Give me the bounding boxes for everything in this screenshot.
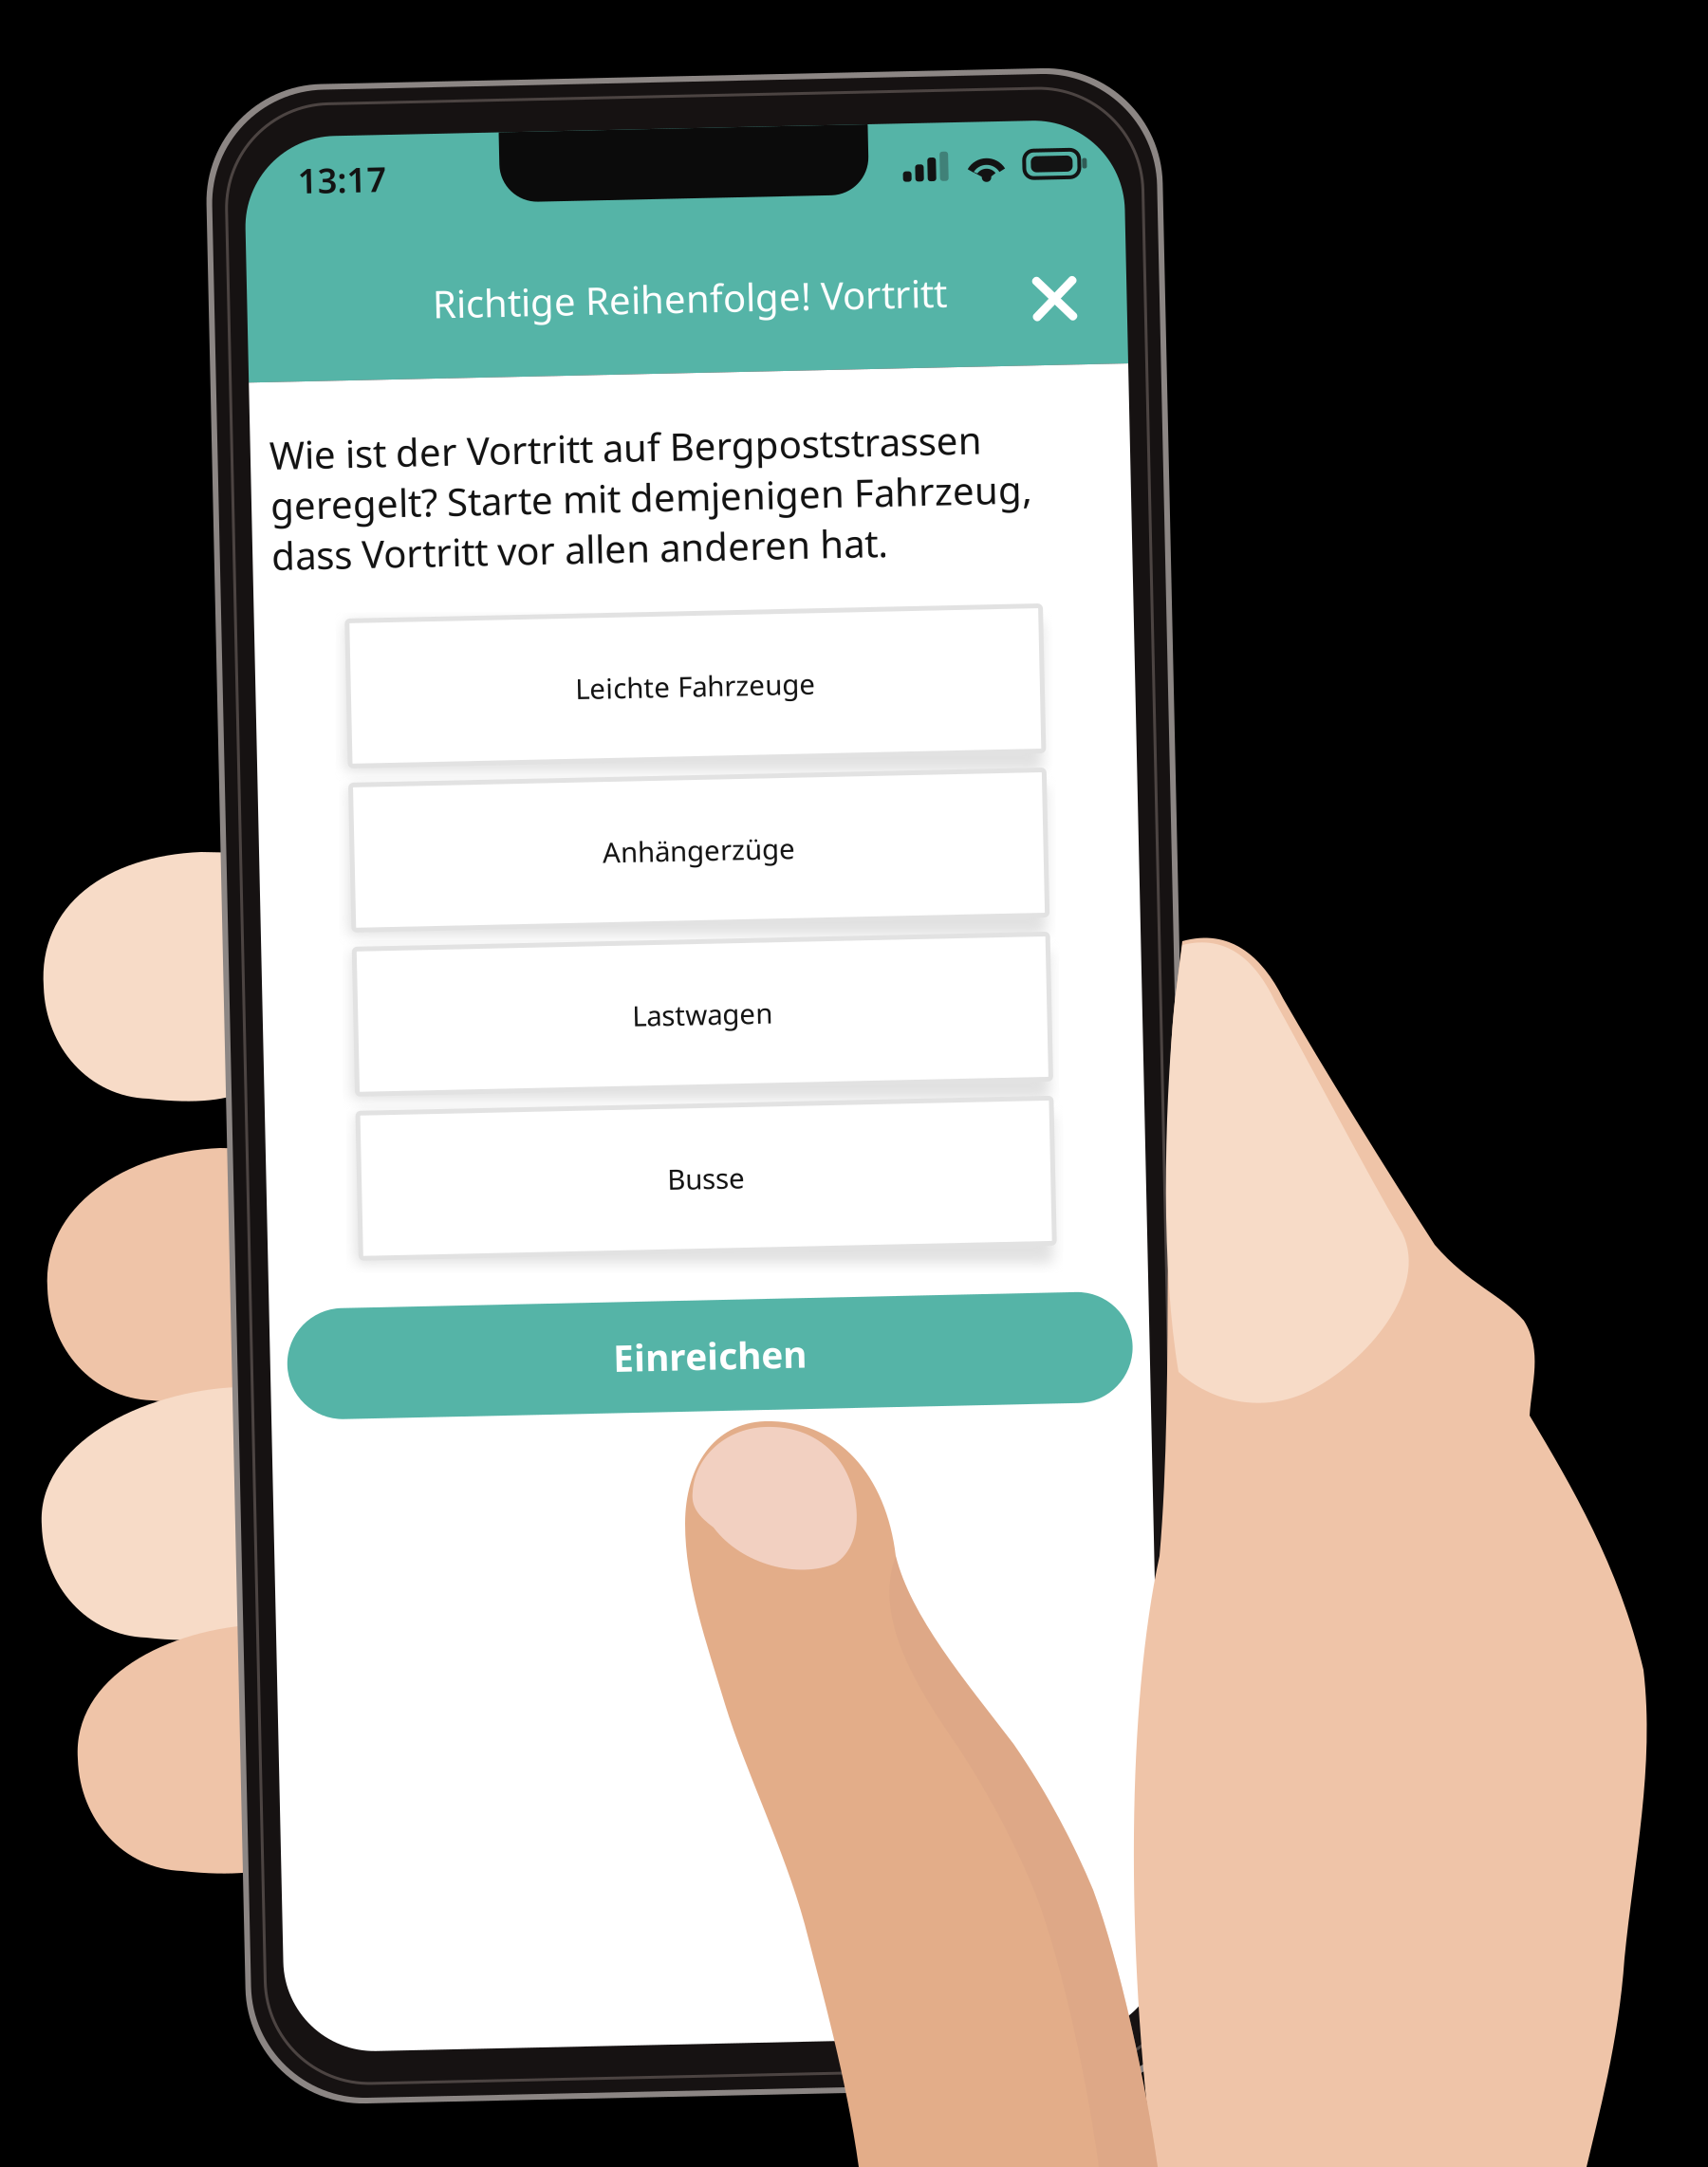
button[interactable]: Busse [357,1106,1051,1251]
staticText: Einreichen [607,1331,801,1380]
button[interactable]: Anhängerzüge [357,777,1051,923]
button[interactable]: Lastwagen [357,942,1051,1087]
staticText: Leichte Fahrzeuge [584,667,824,704]
staticText: Richtige Reihenfolge! Vortritt [450,273,964,323]
button[interactable]: Leichte Fahrzeuge [357,613,1051,758]
staticText: Wie ist der Vortritt auf Bergpoststrasse… [283,420,1045,572]
button[interactable]: Einreichen [281,1300,1127,1411]
staticText: Anhängerzüge [608,832,800,869]
button[interactable]: Schliessen [1032,262,1104,334]
staticText: Busse [665,1160,743,1197]
staticText: 13:17 [317,149,407,194]
staticText: Lastwagen [634,996,774,1033]
